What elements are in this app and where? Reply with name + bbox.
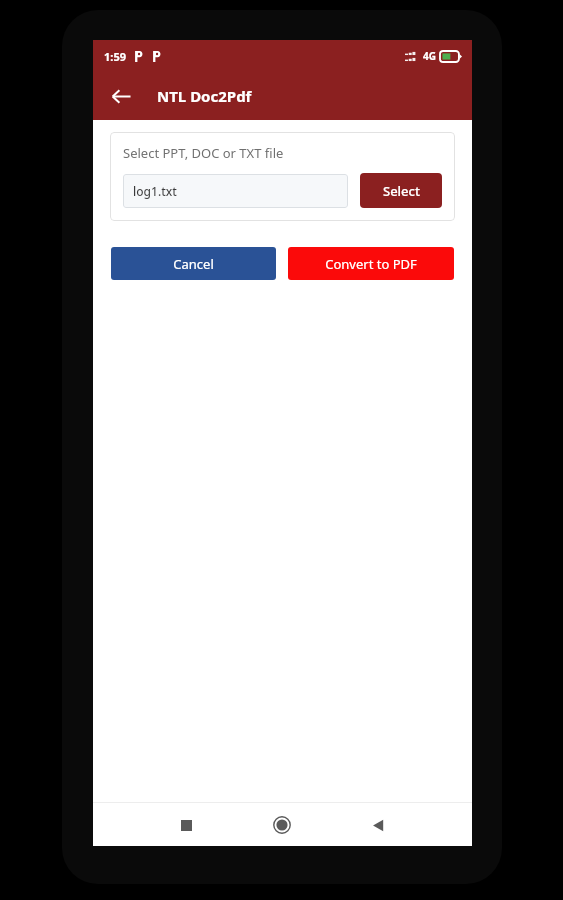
staticText: Cancel [173, 255, 214, 273]
staticText: log1.txt [133, 183, 177, 199]
staticText: Convert to PDF [325, 255, 417, 273]
button[interactable]: Recent apps [166, 805, 206, 845]
button[interactable]: Convert to PDF [288, 247, 454, 280]
staticText: Select [383, 182, 420, 200]
button[interactable]: log1.txt [123, 174, 348, 208]
staticText: NTL Doc2Pdf [157, 86, 252, 106]
button[interactable]: Select [360, 173, 442, 208]
button[interactable]: Cancel [111, 247, 276, 280]
button[interactable]: Back [101, 76, 141, 116]
staticText: 1:59 [104, 49, 126, 64]
staticText: 4G [423, 49, 436, 63]
staticText: Select PPT, DOC or TXT file [123, 144, 284, 162]
button[interactable]: Home [262, 805, 302, 845]
button[interactable]: Back [358, 805, 398, 845]
